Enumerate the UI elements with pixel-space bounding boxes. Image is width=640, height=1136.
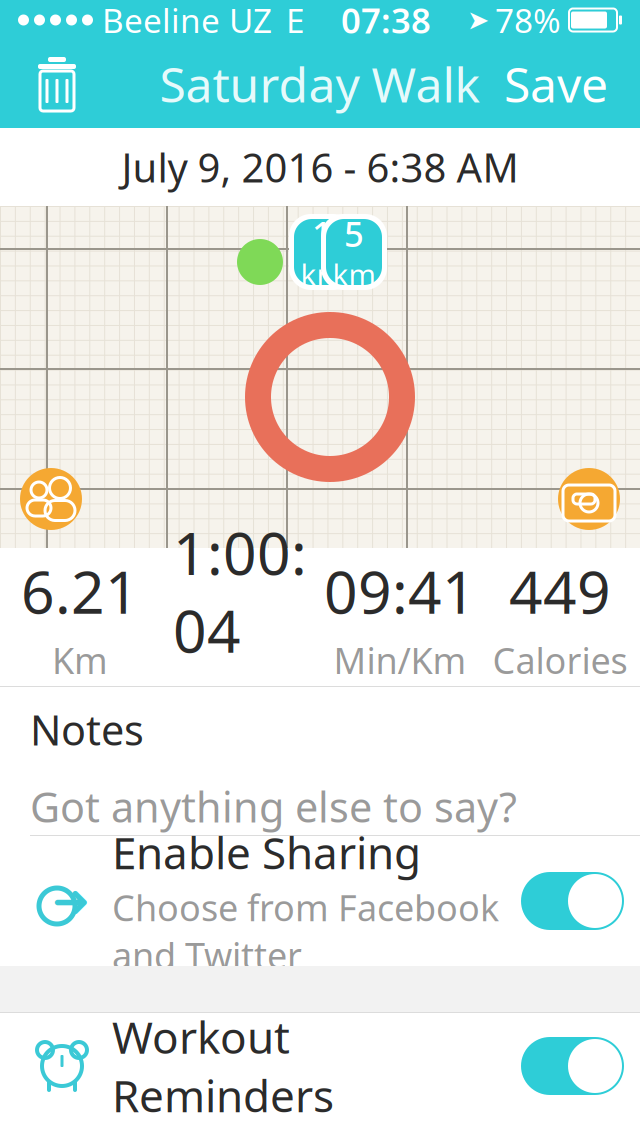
staticText: Time <box>198 675 281 723</box>
staticText: 5 <box>344 210 364 256</box>
button[interactable]: Camera <box>558 468 620 530</box>
staticText: July 9, 2016 - 6:38 AM <box>121 140 518 193</box>
staticText: ➤ <box>467 5 489 35</box>
button[interactable]: Friends <box>20 468 82 530</box>
staticText: ➜ <box>52 875 90 927</box>
staticText: 449 <box>509 552 611 630</box>
staticText: Enable Sharing <box>112 823 421 881</box>
staticText: Choose from Facebook and Twitter <box>112 883 499 979</box>
button[interactable]: Save <box>494 47 618 121</box>
staticText: Notes <box>30 702 144 757</box>
staticText: 1:00:04 <box>173 513 307 669</box>
button[interactable]: Workout Reminders <box>0 1013 640 1119</box>
staticText: km <box>300 254 343 293</box>
staticText: 6.21 <box>21 552 139 630</box>
staticText: Km <box>52 636 108 684</box>
staticText: 09:41 <box>324 552 476 630</box>
staticText: Calories <box>492 636 627 684</box>
staticText: 07:38 <box>341 0 431 43</box>
staticText: Save <box>504 52 608 116</box>
staticText: Beeline UZ <box>102 0 272 42</box>
staticText: Min/Km <box>333 636 466 684</box>
button[interactable]: ➜ <box>0 836 640 966</box>
staticText: 1 <box>312 210 332 256</box>
staticText: km <box>332 254 375 293</box>
staticText: 78% <box>495 0 561 42</box>
staticText: Workout Reminders <box>112 1008 334 1124</box>
staticText: Got anything else to say? <box>30 779 517 834</box>
staticText: Saturday Walk <box>159 52 480 116</box>
button[interactable]: Delete <box>22 47 92 121</box>
staticText: E <box>286 0 305 42</box>
